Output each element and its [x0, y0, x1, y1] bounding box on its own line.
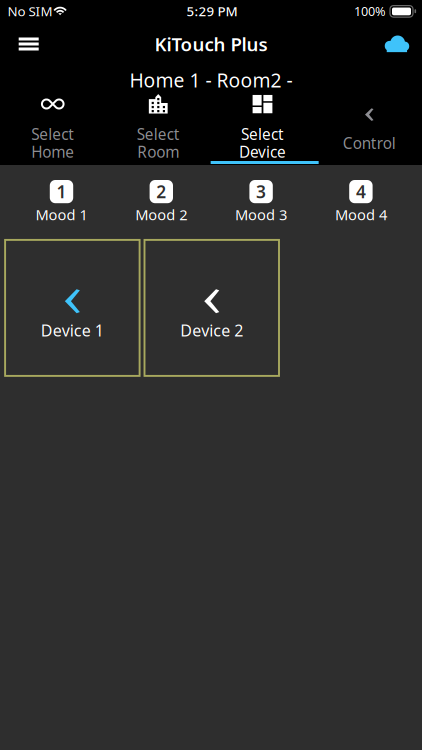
staticText: Device 2: [180, 319, 243, 341]
staticText: No SIM: [8, 2, 53, 20]
button[interactable]: Select: [0, 91, 105, 166]
staticText: Mood 1: [35, 204, 87, 224]
staticText: KiTouch Plus: [154, 31, 267, 57]
staticText: Mood 4: [335, 204, 387, 224]
button[interactable]: 1: [12, 180, 111, 222]
button[interactable]: Select: [211, 91, 316, 166]
button[interactable]: 3: [211, 180, 311, 222]
button[interactable]: Device 2: [144, 240, 279, 376]
staticText: Device: [239, 141, 286, 162]
button[interactable]: Device 1: [5, 240, 140, 376]
staticText: 5:29 PM: [186, 2, 237, 20]
staticText: Room: [137, 141, 179, 162]
staticText: Select: [31, 123, 74, 144]
button[interactable]: 4: [311, 180, 411, 222]
staticText: Home 1 - Room2 -: [129, 67, 292, 93]
staticText: Control: [343, 132, 396, 153]
button[interactable]: Menu: [6, 26, 52, 61]
staticText: Select: [241, 123, 284, 144]
staticText: 1: [56, 180, 66, 203]
staticText: 4: [356, 180, 366, 203]
button[interactable]: Control: [316, 91, 422, 166]
staticText: Mood 3: [235, 204, 287, 224]
staticText: Device 1: [41, 319, 104, 341]
staticText: 3: [256, 180, 266, 203]
staticText: Home: [31, 141, 74, 162]
button[interactable]: 2: [111, 180, 211, 222]
staticText: 100%: [354, 2, 386, 20]
button[interactable]: Select: [105, 91, 211, 166]
staticText: 2: [156, 180, 166, 203]
staticText: Mood 2: [135, 204, 187, 224]
staticText: Select: [137, 123, 180, 144]
button[interactable]: Cloud sync status: [373, 25, 421, 62]
